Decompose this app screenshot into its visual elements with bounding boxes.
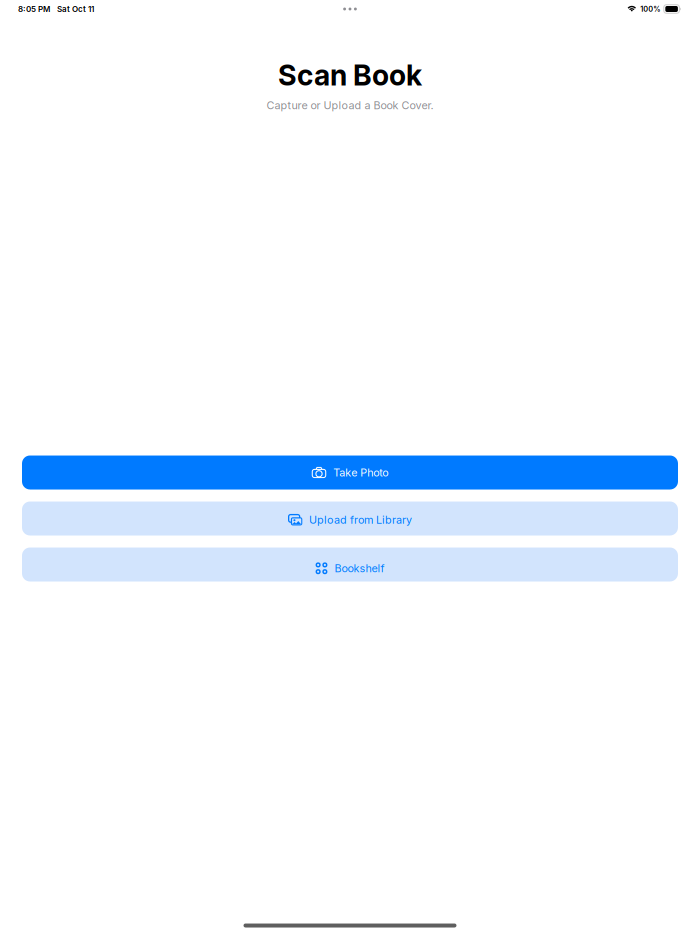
staticText: Bookshelf [334,562,384,575]
staticText: Take Photo [333,466,388,479]
button[interactable]: Bookshelf [22,547,678,581]
button[interactable]: Upload from Library [22,501,678,535]
staticText: Sat Oct 11 [57,4,94,14]
button[interactable]: Take Photo [22,455,678,489]
staticText: Upload from Library [309,513,412,526]
staticText: Scan Book [278,58,422,92]
staticText: 100% [640,5,660,13]
staticText: 8:05 PM [18,4,50,14]
staticText: Capture or Upload a Book Cover. [266,99,433,112]
